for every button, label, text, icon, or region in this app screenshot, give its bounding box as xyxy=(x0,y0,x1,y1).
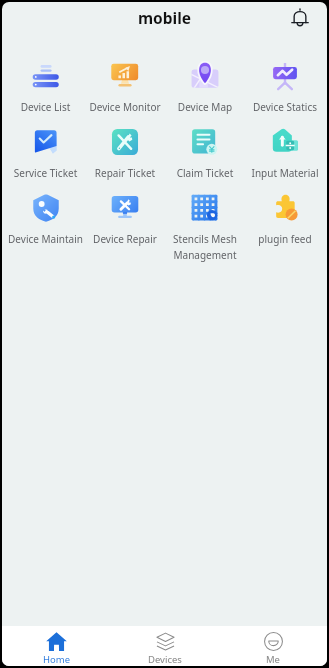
button[interactable]: Notifications xyxy=(288,5,312,29)
button[interactable]: Home xyxy=(2,626,111,666)
button[interactable]: Devices xyxy=(111,626,219,666)
button[interactable]: plugin feed xyxy=(245,178,325,244)
staticText: Me xyxy=(266,653,280,666)
staticText: Service Ticket xyxy=(6,166,85,180)
staticText: Device Maintain xyxy=(6,232,85,246)
button[interactable]: Input Material xyxy=(245,112,325,178)
button[interactable]: Me xyxy=(219,626,327,666)
button[interactable]: Device Monitor xyxy=(85,46,165,112)
staticText: Device Monitor xyxy=(85,100,165,114)
staticText: Stencils Mesh Management xyxy=(165,232,245,261)
button[interactable]: Device Statics xyxy=(245,46,325,112)
button[interactable]: Device Maintain xyxy=(6,178,85,244)
staticText: plugin feed xyxy=(245,232,325,246)
staticText: Input Material xyxy=(245,166,325,180)
button[interactable]: Stencils Mesh Management xyxy=(165,178,245,244)
button[interactable]: Service Ticket xyxy=(6,112,85,178)
staticText: Device List xyxy=(6,100,85,114)
button[interactable]: Device List xyxy=(6,46,85,112)
staticText: Devices xyxy=(148,653,182,666)
button[interactable]: Device Map xyxy=(165,46,245,112)
button[interactable]: Repair Ticket xyxy=(85,112,165,178)
staticText: Home xyxy=(43,653,71,666)
staticText: Repair Ticket xyxy=(85,166,165,180)
staticText: Device Statics xyxy=(245,100,325,114)
button[interactable]: Device Repair xyxy=(85,178,165,244)
staticText: Device Repair xyxy=(85,232,165,246)
button[interactable]: Claim Ticket xyxy=(165,112,245,178)
staticText: mobile xyxy=(138,7,192,28)
staticText: Claim Ticket xyxy=(165,166,245,180)
staticText: Device Map xyxy=(165,100,245,114)
